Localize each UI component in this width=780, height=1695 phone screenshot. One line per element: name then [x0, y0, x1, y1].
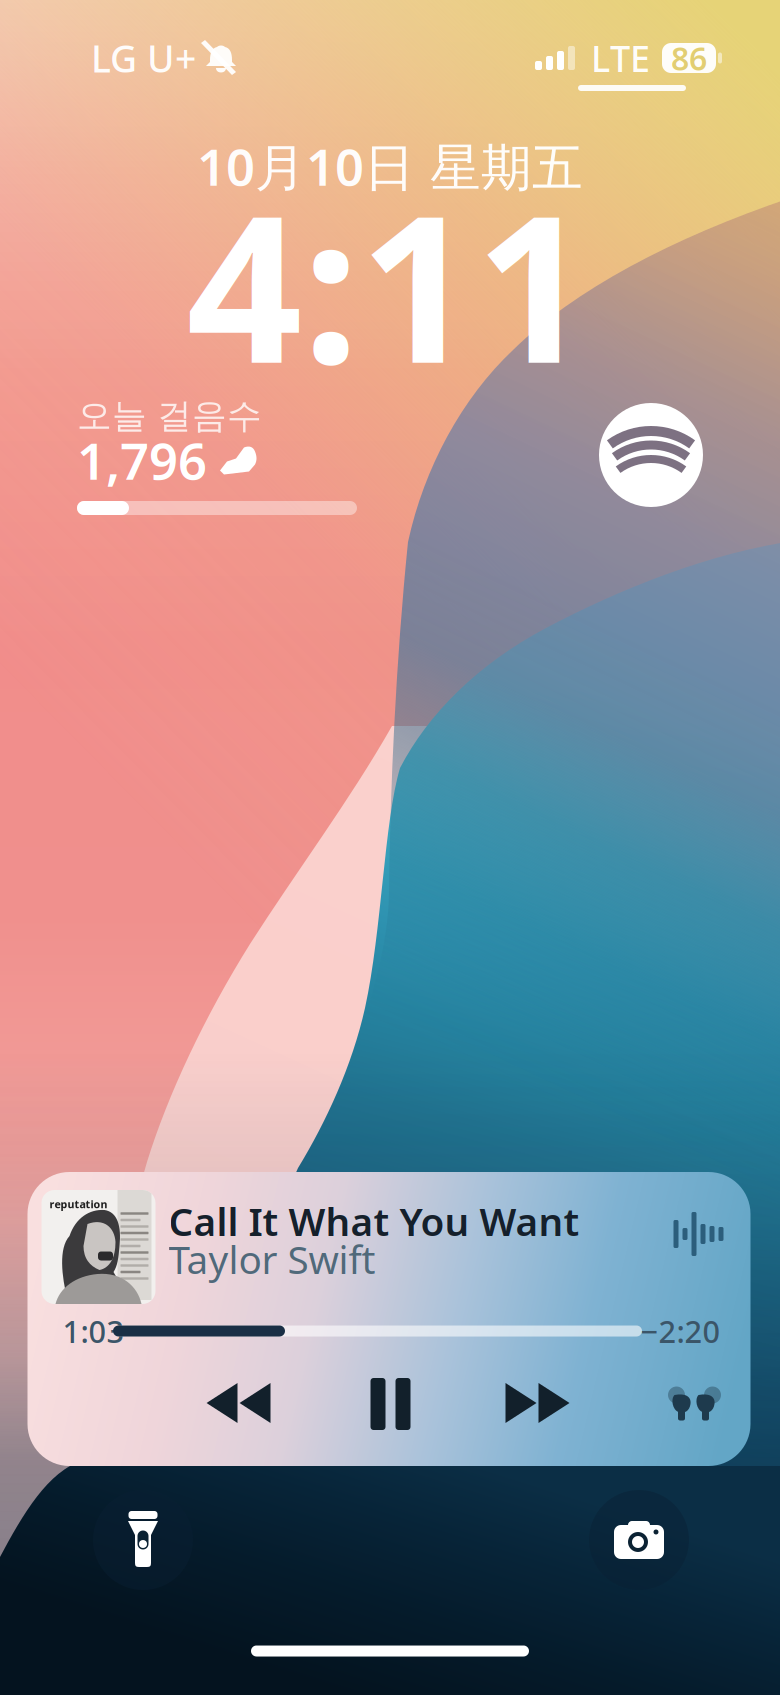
staticText: 86 — [671, 37, 707, 79]
button[interactable]: Flashlight — [93, 1490, 193, 1590]
button[interactable]: Rewind — [204, 1381, 274, 1427]
staticText: LTE — [591, 34, 650, 82]
staticText: 10月10日 星期五 — [197, 132, 583, 200]
staticText: 오늘 걸음수 — [77, 395, 262, 437]
button[interactable]: Pause — [369, 1378, 411, 1430]
staticText: Taylor Swift — [168, 1233, 375, 1285]
staticText: LG U+ — [91, 33, 196, 83]
button[interactable]: Fast forward — [503, 1381, 573, 1427]
button[interactable]: AirPods output — [666, 1381, 722, 1427]
staticText: 1:03 — [62, 1311, 124, 1351]
staticText: 1,796 — [77, 426, 207, 494]
button[interactable]: Spotify — [599, 403, 703, 507]
button[interactable]: Camera — [589, 1490, 689, 1590]
staticText: Call It What You Want — [168, 1195, 579, 1247]
staticText: reputation — [49, 1197, 107, 1211]
staticText: −2:20 — [640, 1311, 720, 1351]
staticText: 4:11 — [186, 149, 591, 418]
